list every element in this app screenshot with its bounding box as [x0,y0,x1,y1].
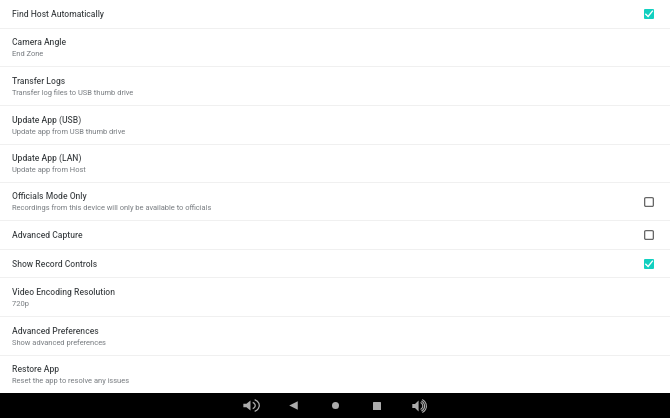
button[interactable]: Camera Angle [0,29,670,66]
button[interactable]: Update App (USB) [0,106,670,144]
button[interactable]: Transfer Logs [0,67,670,105]
staticText: Recordings from this device will only be… [12,203,212,212]
button[interactable]: Unchecked [636,223,662,247]
staticText: Restore App [12,364,60,374]
button[interactable]: Video Encoding Resolution [0,278,670,316]
staticText: Show Record Controls [12,259,98,269]
button[interactable]: Find Host Automatically [0,0,670,28]
button[interactable]: Officials Mode Only [0,183,670,220]
staticText: Advanced Capture [12,230,83,240]
staticText: Update App (LAN) [12,153,82,163]
staticText: Reset the app to resolve any issues [12,376,130,385]
staticText: Update App (USB) [12,115,82,125]
button[interactable]: Advanced Capture [0,221,670,249]
staticText: Video Encoding Resolution [12,287,116,297]
button[interactable]: Home [314,393,356,418]
staticText: Show advanced preferences [12,338,106,347]
staticText: Transfer Logs [12,76,66,86]
button[interactable]: Unchecked [636,190,662,214]
button[interactable]: Volume up [398,393,440,418]
button[interactable]: Back [272,393,314,418]
staticText: 720p [12,299,29,308]
button[interactable]: Update App (LAN) [0,145,670,182]
button[interactable]: Recents [356,393,398,418]
button[interactable]: Restore App [0,356,670,393]
staticText: Camera Angle [12,37,67,47]
staticText: Update app from USB thumb drive [12,127,126,136]
staticText: Update app from Host [12,165,86,174]
button[interactable]: Checked [636,252,662,276]
button[interactable]: Volume down [230,393,272,418]
button[interactable]: Checked [636,2,662,26]
staticText: Officials Mode Only [12,191,87,201]
button[interactable]: Show Record Controls [0,250,670,277]
button[interactable]: Advanced Preferences [0,317,670,355]
staticText: Find Host Automatically [12,9,105,19]
staticText: Advanced Preferences [12,326,99,336]
staticText: Transfer log files to USB thumb drive [12,88,134,97]
staticText: End Zone [12,49,44,58]
